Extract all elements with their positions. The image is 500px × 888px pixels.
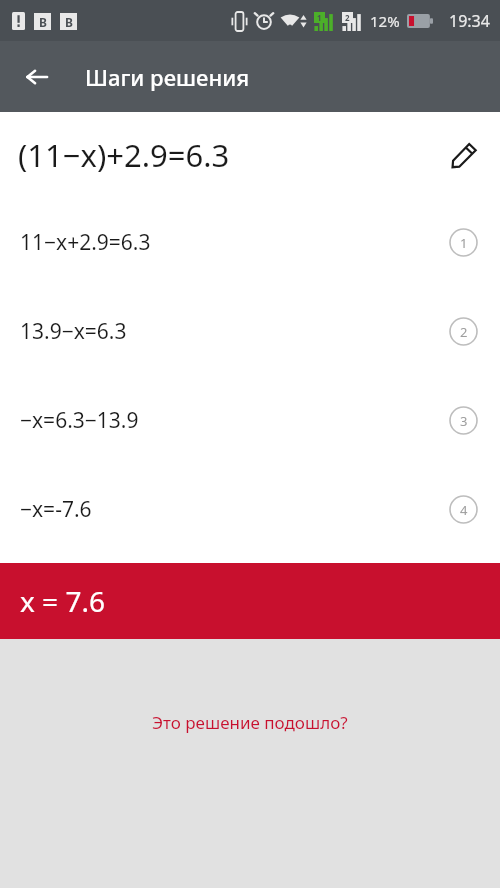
button[interactable]: 13.9−x=6.3 bbox=[0, 287, 500, 376]
button[interactable]: −x=6.3−13.9 bbox=[0, 376, 500, 465]
staticText: 2 bbox=[345, 12, 350, 23]
staticText: B bbox=[39, 14, 47, 30]
staticText: B bbox=[65, 14, 73, 30]
staticText: Это решение подошло? bbox=[152, 711, 348, 734]
staticText: 13.9−x=6.3 bbox=[20, 317, 127, 346]
button[interactable]: Back bbox=[14, 54, 60, 100]
button[interactable]: x = 7.6 bbox=[0, 563, 500, 639]
staticText: 3 bbox=[460, 412, 468, 430]
staticText: 2 bbox=[460, 323, 468, 341]
staticText: 12% bbox=[370, 11, 400, 31]
staticText: 1 bbox=[460, 234, 468, 252]
button[interactable]: 11−x+2.9=6.3 bbox=[0, 198, 500, 287]
button[interactable]: Edit bbox=[440, 131, 488, 179]
staticText: 11−x+2.9=6.3 bbox=[20, 228, 151, 257]
button[interactable]: −x=-7.6 bbox=[0, 465, 500, 554]
staticText: (11−x)+2.9=6.3 bbox=[18, 134, 230, 176]
button[interactable]: Это решение подошло? bbox=[140, 705, 360, 740]
staticText: −x=-7.6 bbox=[20, 495, 92, 524]
staticText: 1 bbox=[317, 12, 322, 23]
staticText: Шаги решения bbox=[85, 62, 250, 92]
staticText: 4 bbox=[460, 501, 468, 519]
staticText: −x=6.3−13.9 bbox=[20, 406, 139, 435]
staticText: x = 7.6 bbox=[20, 582, 105, 620]
staticText: 19:34 bbox=[449, 10, 490, 32]
